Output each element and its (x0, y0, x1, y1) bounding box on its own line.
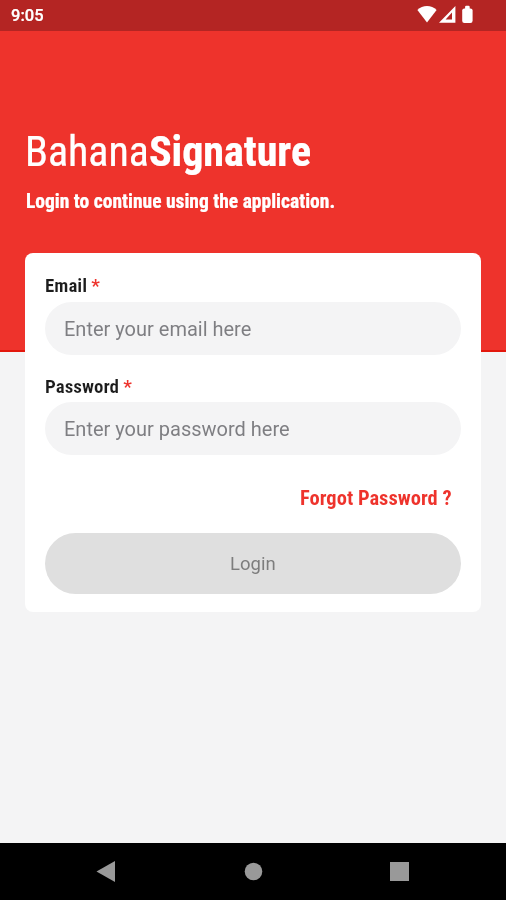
staticText: Enter your password here (64, 417, 290, 440)
button[interactable]: Home (227, 846, 279, 898)
button[interactable]: Login (45, 533, 461, 594)
button[interactable]: Recent apps (373, 846, 425, 898)
staticText: BahanaSignature (25, 127, 312, 176)
button[interactable]: Forgot Password ? (300, 486, 461, 510)
staticText: 9:05 (11, 6, 44, 25)
staticText: Password * (45, 375, 132, 397)
staticText: Login (230, 553, 276, 575)
staticText: Email * (45, 274, 100, 296)
staticText: Enter your email here (64, 317, 252, 340)
button[interactable]: Enter your email here (45, 302, 461, 355)
button[interactable]: Enter your password here (45, 402, 461, 455)
button[interactable]: Back (80, 846, 132, 898)
staticText: Login to continue using the application. (26, 190, 336, 213)
